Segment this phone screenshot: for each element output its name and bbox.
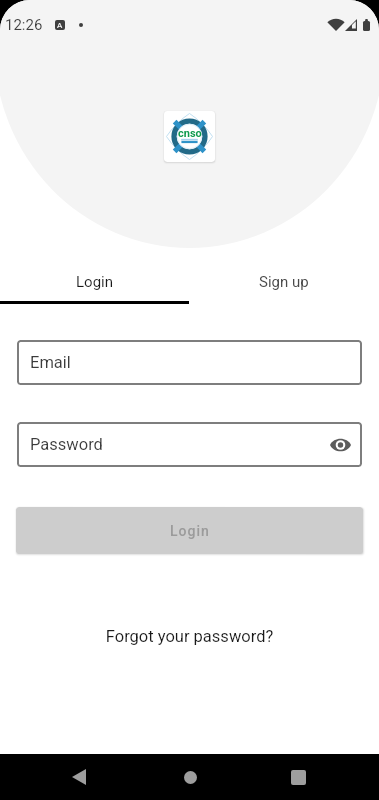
staticText: Sign up <box>259 273 309 291</box>
staticText: Email <box>30 353 71 372</box>
button[interactable]: Back <box>51 754 107 800</box>
button[interactable]: Forgot your password? <box>0 627 379 646</box>
button[interactable]: Password <box>17 422 362 467</box>
button[interactable]: Email <box>17 340 362 385</box>
button[interactable]: Login <box>0 264 189 301</box>
staticText: Password <box>30 435 103 454</box>
button[interactable]: Recents <box>270 754 326 800</box>
staticText: Login <box>76 273 113 291</box>
button[interactable]: Home <box>162 754 218 800</box>
staticText: A <box>57 21 63 30</box>
staticText: 12:26 <box>5 16 43 34</box>
button[interactable]: Show password <box>327 432 353 458</box>
button[interactable]: Sign up <box>189 264 379 301</box>
staticText: Login <box>170 523 210 539</box>
button[interactable]: Login <box>16 507 363 554</box>
staticText: cnso <box>178 127 202 140</box>
